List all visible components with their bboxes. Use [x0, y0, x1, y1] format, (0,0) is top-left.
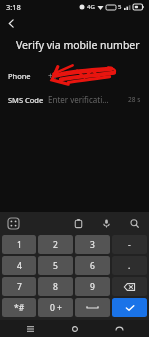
staticText: Enter verificati... — [48, 94, 109, 105]
button[interactable]: Enter — [112, 298, 147, 317]
staticText: 5 — [118, 3, 122, 11]
button[interactable]: 4 — [2, 256, 36, 275]
button[interactable]: Voice input — [99, 216, 113, 230]
staticText: 0 + — [50, 302, 62, 314]
button[interactable]: 7 — [2, 277, 36, 296]
staticText: 3 — [90, 239, 95, 251]
button[interactable]: SMS Code — [0, 88, 149, 110]
button[interactable]: Back — [104, 320, 134, 337]
staticText: 8 — [53, 281, 58, 293]
staticText: 2 — [53, 239, 58, 251]
staticText: 7 — [17, 281, 22, 293]
button[interactable]: Home — [60, 320, 90, 337]
button[interactable]: Phone — [0, 62, 149, 88]
staticText: 1 — [17, 239, 22, 251]
button[interactable]: 5 — [38, 256, 73, 275]
staticText: SMS Code — [8, 95, 44, 105]
button[interactable]: Recents — [15, 320, 45, 337]
staticText: +1 ... — [48, 70, 66, 81]
button[interactable]: Clipboard — [71, 216, 85, 230]
button[interactable]: Switch keyboard — [6, 216, 20, 230]
button[interactable]: 2 — [38, 235, 73, 254]
button[interactable]: *# — [2, 298, 36, 317]
staticText: 6 — [90, 260, 95, 272]
staticText: 28 s — [128, 95, 141, 104]
staticText: 5 — [53, 260, 58, 272]
button[interactable]: Space — [75, 298, 110, 317]
staticText: *# — [14, 302, 25, 314]
button[interactable]: Search — [127, 216, 141, 230]
button[interactable]: Back — [3, 15, 19, 31]
button[interactable]: 8 — [38, 277, 73, 296]
button[interactable]: 6 — [75, 256, 110, 275]
button[interactable]: . — [112, 256, 147, 275]
button[interactable]: 3 — [75, 235, 110, 254]
button[interactable]: Backspace — [112, 277, 147, 296]
button[interactable]: 9 — [75, 277, 110, 296]
staticText: 3:18 — [6, 2, 21, 12]
staticText: 4G — [87, 3, 95, 11]
staticText: Verify via mobile number — [16, 38, 140, 52]
button[interactable]: 0 + — [38, 298, 73, 317]
staticText: 9 — [90, 281, 95, 293]
staticText: 4 — [17, 260, 22, 272]
staticText: . — [128, 260, 131, 272]
button[interactable]: - — [112, 235, 147, 254]
staticText: Phone — [8, 71, 31, 81]
button[interactable]: 1 — [2, 235, 36, 254]
staticText: - — [128, 239, 131, 251]
